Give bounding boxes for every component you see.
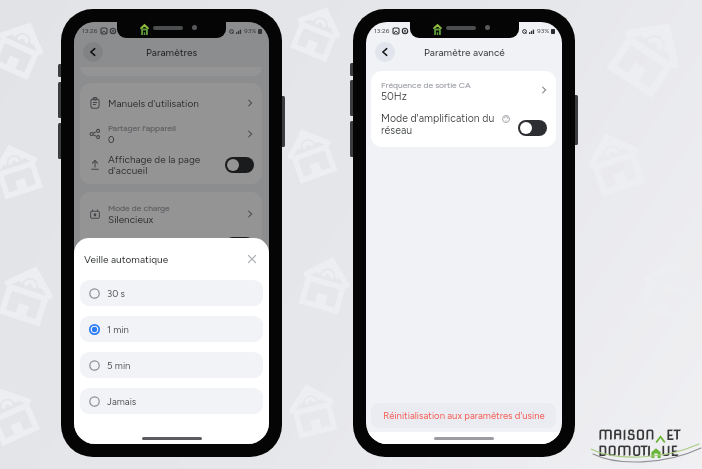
button[interactable]: 5 min [80,352,263,378]
button[interactable]: Manuels d'utilisation [80,87,262,118]
staticText: Partager l'appareil [108,123,176,133]
button[interactable]: Réinitialisation aux paramètres d'usine [371,403,556,428]
staticText: 0 [108,133,115,145]
button[interactable]: Mode de charge [80,198,262,229]
staticText: 13:26 [374,27,390,35]
staticText: Affichage de la page d'accueil [108,153,216,177]
button[interactable]: Toggle [518,120,547,136]
staticText: 5 min [107,360,131,371]
button[interactable]: Augmentation de la [80,229,262,260]
button[interactable]: Toggle [225,237,254,253]
staticText: Fréquence de sortie CA [381,80,471,90]
staticText: Paramètres [146,46,198,58]
staticText: 93% [244,27,257,35]
staticText: Paramètre avancé [424,46,505,58]
button[interactable]: Back [375,42,395,62]
button[interactable]: Partager l'appareil [80,118,262,149]
staticText: Manuels d'utilisation [108,97,199,109]
staticText: Mode de charge [108,203,170,213]
staticText: MAISON [598,427,655,443]
button[interactable]: Affichage de la page d'accueil [80,149,262,180]
staticText: ET [666,427,681,443]
staticText: Jamais [107,396,137,407]
staticText: UE [661,443,679,459]
staticText: Réinitialisation aux paramètres d'usine [383,410,545,421]
button[interactable]: 30 s [80,280,263,306]
staticText: 1 min [107,324,129,335]
button[interactable]: Fréquence de sortie CA [371,71,556,109]
button[interactable]: Toggle [225,157,254,173]
staticText: Silencieux [108,213,154,225]
staticText: 13:26 [82,27,98,35]
button[interactable]: Close [245,252,259,266]
staticText: 93% [537,27,550,35]
button[interactable]: Back [83,42,103,62]
staticText: 30 s [107,288,126,299]
staticText: Veille automatique [84,253,169,265]
button[interactable]: Jamais [80,388,263,414]
staticText: Mode d'amplification du réseau [381,112,499,136]
staticText: 50Hz [381,90,407,103]
staticText: DOMOTI [598,443,651,459]
button[interactable]: Mode d'amplification du réseau [371,109,556,147]
button[interactable]: 1 min [80,316,263,342]
